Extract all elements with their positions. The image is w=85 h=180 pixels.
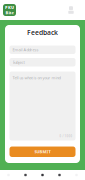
staticText: Subject [12, 60, 24, 65]
staticText: 0 / 1000 [59, 134, 72, 138]
button[interactable]: PKU Bite home [3, 4, 16, 16]
button[interactable]: Log [34, 170, 51, 180]
staticText: SUBMIT [34, 149, 50, 154]
staticText: Tell us what is on your mind [12, 75, 60, 80]
button[interactable]: Profile [66, 4, 76, 15]
staticText: Email Address [12, 47, 38, 52]
button[interactable]: Meals [17, 170, 34, 180]
staticText: Bite [5, 10, 13, 15]
button[interactable]: SUBMIT [9, 146, 75, 157]
button[interactable]: Progress [51, 170, 68, 180]
staticText: Feedback [27, 28, 58, 37]
staticText: PKU [5, 5, 14, 10]
